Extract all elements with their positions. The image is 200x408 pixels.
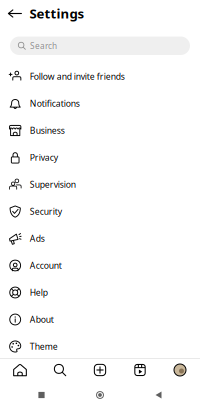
button[interactable]: Theme	[0, 333, 200, 360]
button[interactable]: About	[0, 306, 200, 333]
button[interactable]: Reels	[120, 358, 160, 382]
staticText: Theme	[30, 341, 58, 352]
staticText: Search	[30, 40, 57, 51]
button[interactable]: Business	[0, 117, 200, 144]
button[interactable]: Recent apps	[24, 382, 58, 408]
staticText: Help	[30, 287, 48, 298]
button[interactable]: Profile	[160, 358, 200, 382]
staticText: About	[30, 314, 54, 325]
button[interactable]: Home	[0, 358, 40, 382]
button[interactable]: Home	[83, 382, 117, 408]
staticText: Settings	[29, 4, 84, 22]
button[interactable]: Security	[0, 198, 200, 225]
staticText: Account	[30, 260, 62, 271]
staticText: Security	[30, 206, 62, 217]
button[interactable]: Help	[0, 279, 200, 306]
button[interactable]: Supervision	[0, 171, 200, 198]
button[interactable]: Search	[0, 27, 200, 63]
staticText: Privacy	[30, 152, 58, 163]
staticText: Follow and invite friends	[30, 71, 125, 82]
staticText: Business	[30, 125, 65, 136]
button[interactable]: Notifications	[0, 90, 200, 117]
button[interactable]: Account	[0, 252, 200, 279]
button[interactable]: Follow and invite friends	[0, 63, 200, 90]
staticText: Supervision	[30, 179, 76, 190]
button[interactable]: Privacy	[0, 144, 200, 171]
button[interactable]: Create	[80, 358, 120, 382]
button[interactable]: Search	[40, 358, 80, 382]
staticText: Ads	[30, 233, 45, 244]
button[interactable]: Back	[0, 0, 29, 27]
button[interactable]: Back	[141, 382, 175, 408]
staticText: Notifications	[30, 98, 80, 109]
button[interactable]: Ads	[0, 225, 200, 252]
